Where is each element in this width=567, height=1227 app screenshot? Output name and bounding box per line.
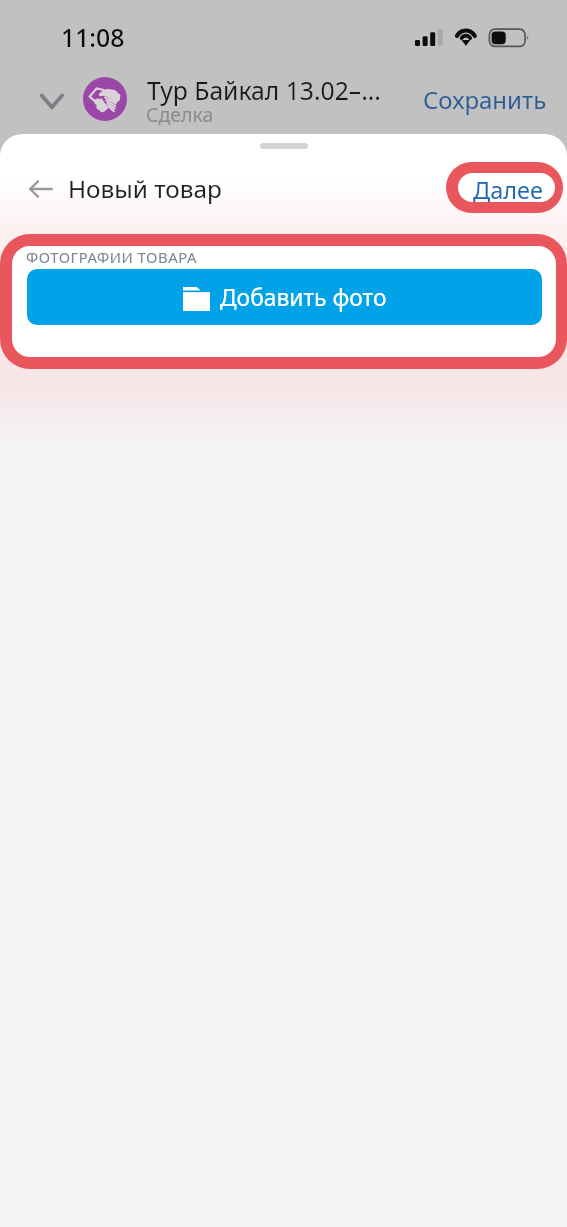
staticText: Добавить фото bbox=[220, 282, 387, 313]
button[interactable]: Back bbox=[28, 177, 54, 201]
button[interactable]: ФОТОГРАФИИ ТОВАРА bbox=[12, 246, 556, 357]
staticText: 11:08 bbox=[61, 20, 125, 54]
staticText: Далее bbox=[473, 174, 543, 202]
button[interactable]: Добавить фото bbox=[27, 269, 542, 325]
button[interactable]: Далее bbox=[446, 162, 563, 213]
staticText: ФОТОГРАФИИ ТОВАРА bbox=[26, 247, 197, 267]
staticText: Сохранить bbox=[423, 83, 547, 116]
staticText: Новый товар bbox=[68, 172, 222, 205]
button[interactable]: Сохранить bbox=[423, 83, 547, 116]
button[interactable]: Collapse bbox=[38, 90, 66, 112]
button[interactable]: Deal avatar bbox=[83, 77, 127, 121]
staticText: Тур Байкал 13.02–... bbox=[147, 74, 387, 108]
staticText: Сделка bbox=[146, 101, 214, 128]
